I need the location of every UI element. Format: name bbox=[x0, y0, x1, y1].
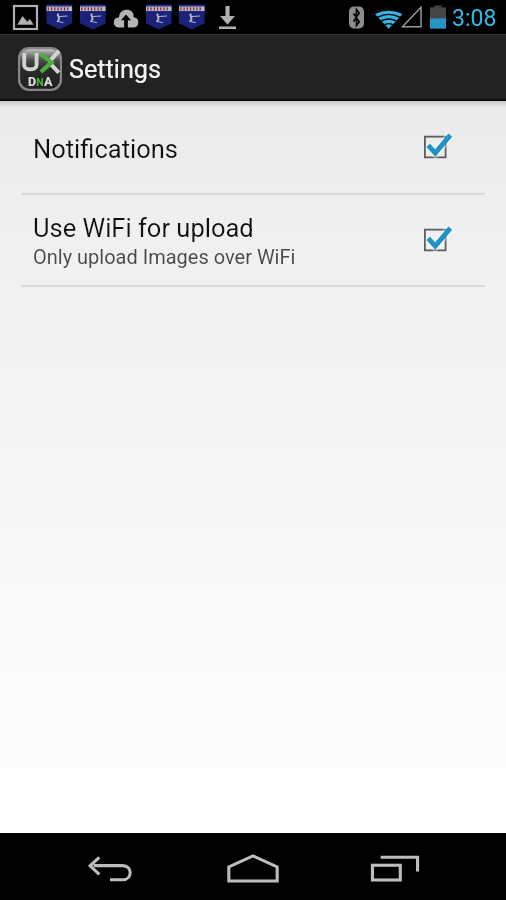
button[interactable]: Use WiFi for upload bbox=[0, 195, 506, 285]
button[interactable]: Home bbox=[211, 842, 295, 892]
staticText: 3:08 bbox=[452, 5, 497, 32]
button[interactable]: Recent apps bbox=[353, 842, 437, 892]
button[interactable]: Back bbox=[70, 842, 154, 892]
staticText: DNA bbox=[28, 74, 53, 89]
staticText: Only upload Images over WiFi bbox=[33, 245, 296, 268]
button[interactable]: Notifications bbox=[0, 101, 506, 193]
staticText: Use WiFi for upload bbox=[33, 213, 254, 243]
staticText: Notifications bbox=[33, 134, 178, 164]
staticText: Settings bbox=[69, 55, 161, 85]
